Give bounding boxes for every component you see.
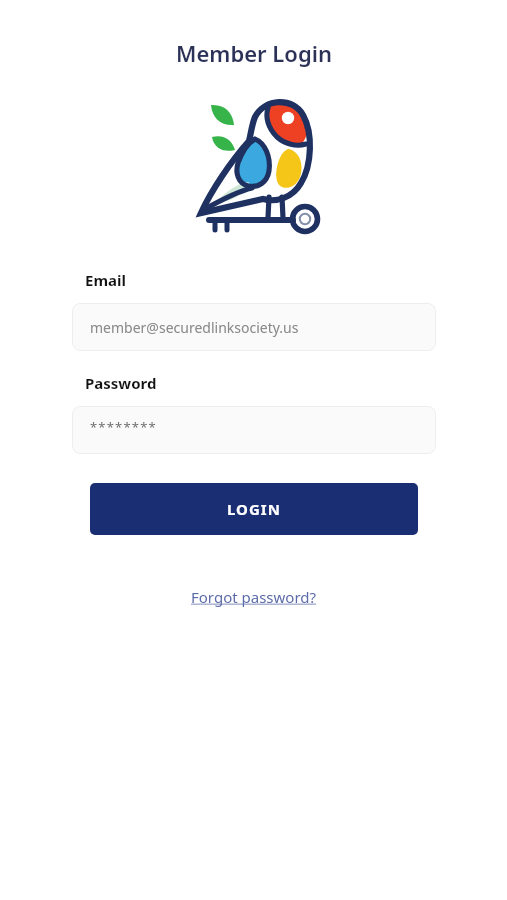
staticText: LOGIN xyxy=(227,499,281,519)
staticText: Email xyxy=(85,270,126,290)
button[interactable]: ******** xyxy=(72,406,436,454)
staticText: Forgot password? xyxy=(191,587,317,607)
staticText: Member Login xyxy=(176,38,332,68)
staticText: member@securedlinksociety.us xyxy=(90,318,299,337)
button[interactable]: Forgot password? xyxy=(185,583,323,611)
staticText: ******** xyxy=(90,418,157,436)
staticText: Password xyxy=(85,373,157,393)
other: Secured Link Society logo xyxy=(189,87,319,232)
button[interactable]: member@securedlinksociety.us xyxy=(72,303,436,351)
button[interactable]: LOGIN xyxy=(90,483,418,535)
